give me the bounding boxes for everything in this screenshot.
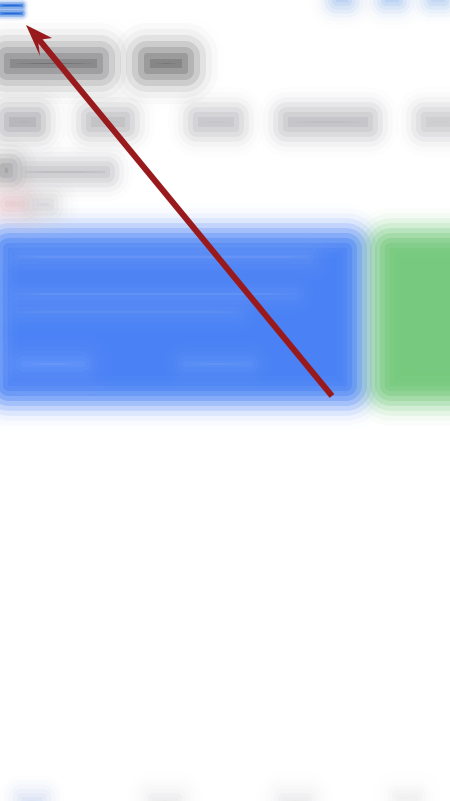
button[interactable]: Following tab xyxy=(0,0,450,801)
button[interactable]: Featured story xyxy=(0,0,450,801)
button[interactable]: Newsstand tab xyxy=(0,0,450,801)
button[interactable]: Newsstand xyxy=(0,0,450,801)
button[interactable]: Sports xyxy=(0,0,450,801)
button[interactable]: Search xyxy=(0,0,450,801)
button[interactable]: Main menu xyxy=(0,0,450,801)
button[interactable]: Account xyxy=(0,0,450,801)
button[interactable]: Following xyxy=(0,0,450,801)
button[interactable]: Home tab xyxy=(0,0,450,801)
button[interactable]: For you xyxy=(0,0,450,801)
button[interactable]: Next story xyxy=(0,0,450,801)
button[interactable]: Headlines tab xyxy=(0,0,450,801)
button[interactable]: Headlines xyxy=(0,0,450,801)
button[interactable]: Notifications xyxy=(0,0,450,801)
